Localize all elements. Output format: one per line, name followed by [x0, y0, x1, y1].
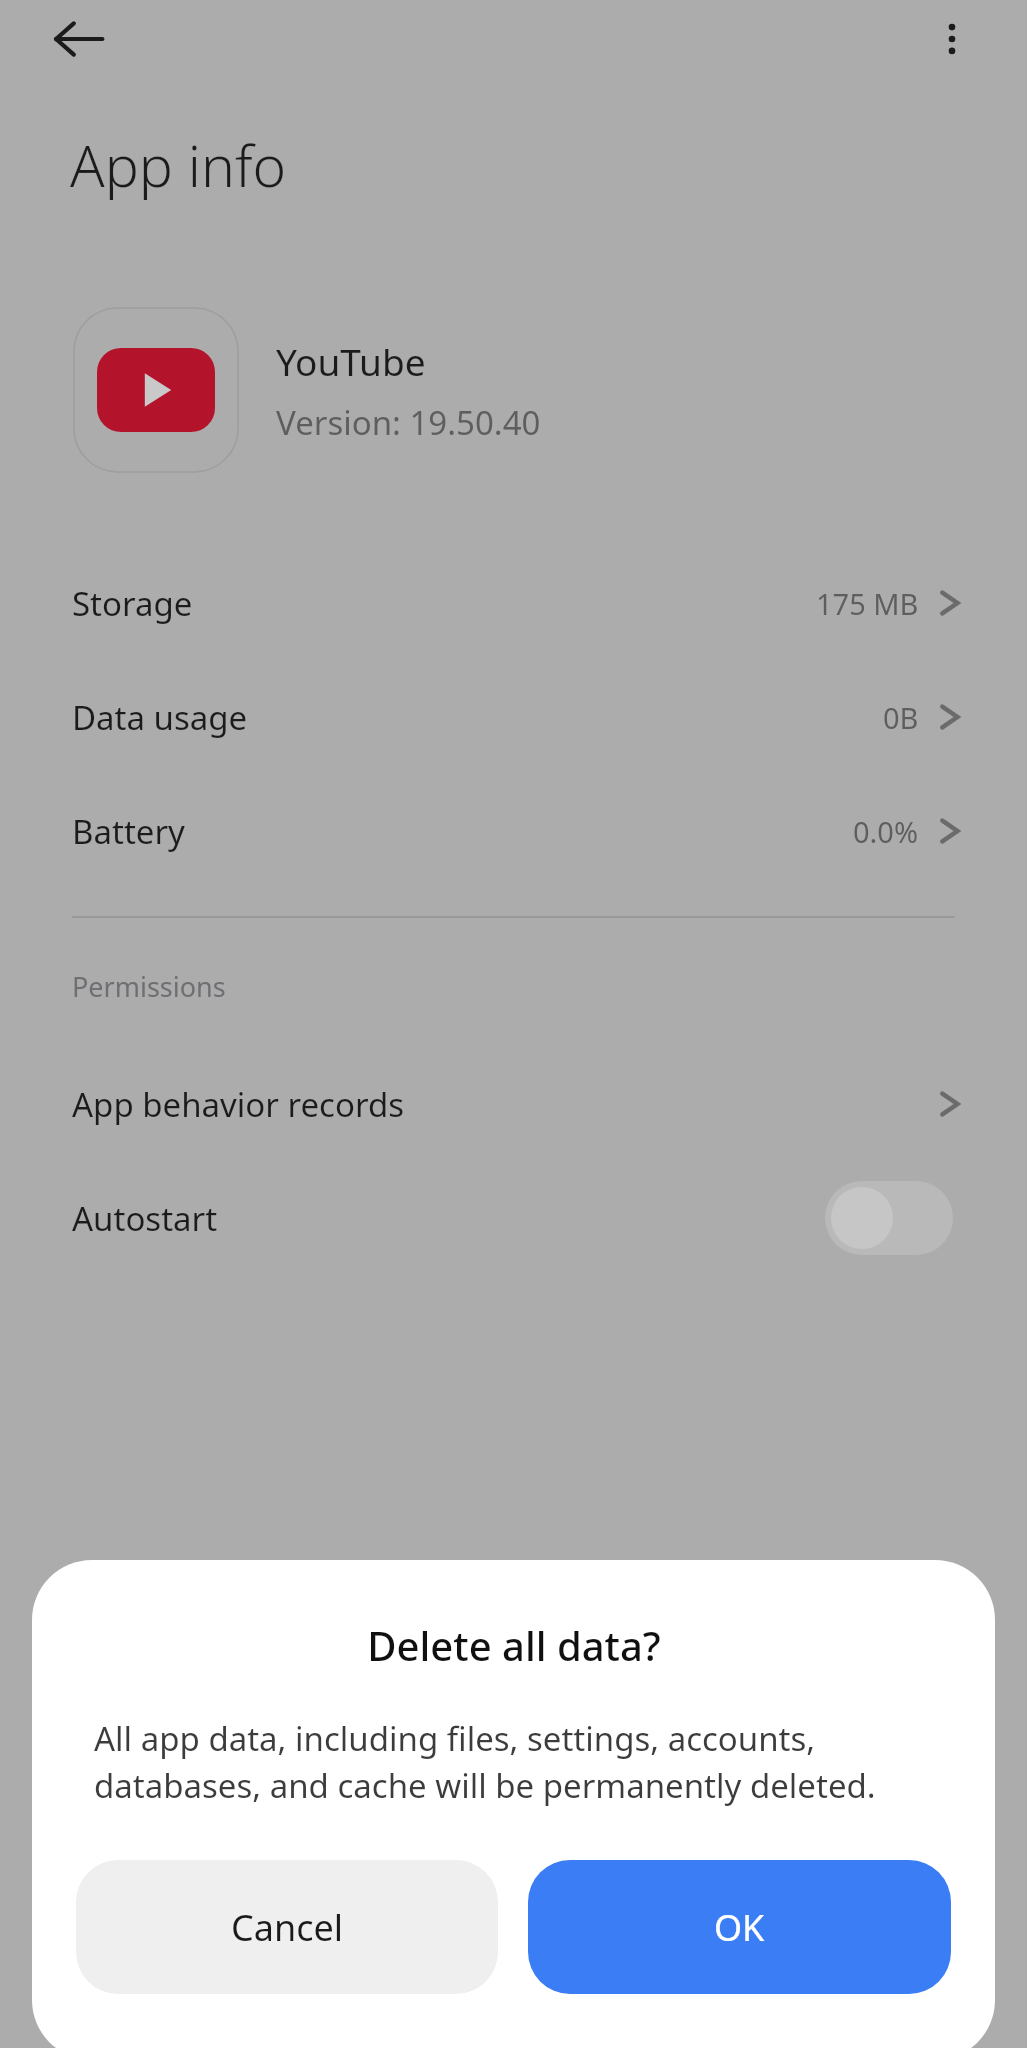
- staticText: All app data, including files, settings,…: [94, 1716, 933, 1808]
- button[interactable]: Autostart: [0, 1161, 1027, 1275]
- button[interactable]: Back: [40, 0, 118, 78]
- button[interactable]: Battery: [0, 774, 1027, 888]
- staticText: Permissions: [72, 968, 226, 1005]
- button[interactable]: Storage: [0, 546, 1027, 660]
- button[interactable]: More options: [913, 0, 991, 78]
- staticText: OK: [714, 1903, 765, 1952]
- button[interactable]: Cancel: [76, 1860, 498, 1994]
- staticText: Version: 19.50.40: [276, 400, 541, 445]
- staticText: 0B: [883, 698, 919, 737]
- staticText: Storage: [72, 581, 193, 626]
- staticText: 0.0%: [853, 812, 919, 851]
- staticText: Autostart: [72, 1196, 218, 1241]
- staticText: App behavior records: [72, 1082, 404, 1127]
- staticText: App info: [70, 126, 287, 204]
- button[interactable]: App behavior records: [0, 1047, 1027, 1161]
- staticText: Cancel: [231, 1903, 344, 1952]
- staticText: Battery: [72, 809, 185, 854]
- staticText: Data usage: [72, 695, 248, 740]
- button[interactable]: OK: [528, 1860, 951, 1994]
- staticText: 175 MB: [816, 584, 919, 623]
- staticText: YouTube: [276, 336, 426, 386]
- button[interactable]: Autostart toggle: [825, 1181, 953, 1255]
- button[interactable]: Data usage: [0, 660, 1027, 774]
- staticText: Delete all data?: [367, 1618, 661, 1672]
